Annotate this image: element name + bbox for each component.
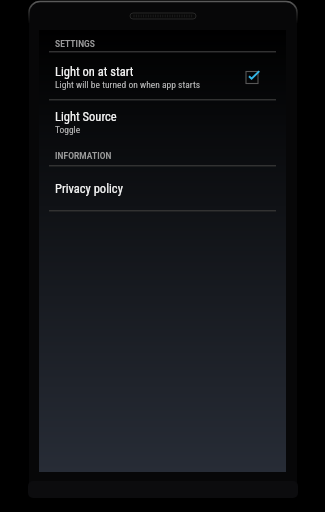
staticText: Light will be turned on when app starts (55, 79, 201, 90)
staticText: Privacy policy (55, 181, 123, 196)
staticText: SETTINGS (55, 39, 96, 49)
button[interactable]: Light Source (39, 106, 286, 138)
staticText: Light on at start (55, 64, 134, 79)
button[interactable]: Light on at start checkbox (242, 67, 262, 87)
button[interactable]: Light on at start (39, 61, 286, 93)
staticText: Light Source (55, 109, 117, 124)
button[interactable]: Privacy policy (39, 175, 286, 201)
staticText: Toggle (55, 124, 81, 135)
staticText: INFORMATION (55, 151, 112, 161)
